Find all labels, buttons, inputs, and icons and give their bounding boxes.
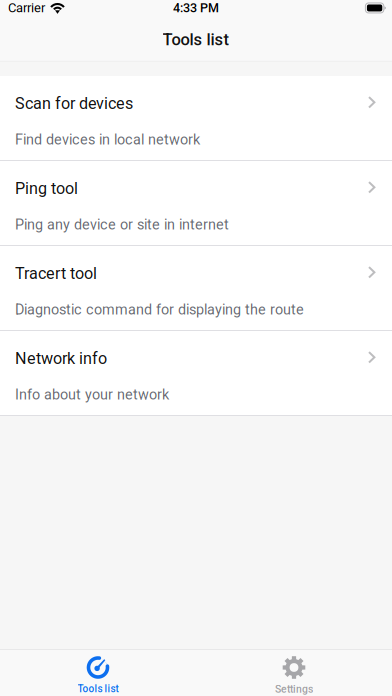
button[interactable]: Network info — [0, 331, 392, 415]
button[interactable]: Settings — [196, 649, 392, 696]
staticText: Info about your network — [15, 386, 169, 403]
button[interactable]: Tools list — [0, 649, 196, 696]
staticText: Diagnostic command for displaying the ro… — [15, 301, 304, 318]
staticText: Find devices in local network — [15, 131, 200, 148]
button[interactable]: Scan for devices — [0, 76, 392, 160]
staticText: Ping tool — [15, 179, 78, 198]
staticText: 4:33 PM — [173, 1, 219, 15]
staticText: Settings — [275, 683, 313, 695]
staticText: Carrier — [8, 0, 45, 16]
staticText: Tools list — [162, 30, 229, 49]
button[interactable]: Tracert tool — [0, 246, 392, 330]
staticText: Tools list — [77, 683, 118, 695]
button[interactable]: Ping tool — [0, 161, 392, 245]
staticText: Network info — [15, 349, 107, 368]
staticText: Ping any device or site in internet — [15, 216, 229, 233]
staticText: Scan for devices — [15, 94, 133, 113]
staticText: Tracert tool — [15, 264, 97, 283]
